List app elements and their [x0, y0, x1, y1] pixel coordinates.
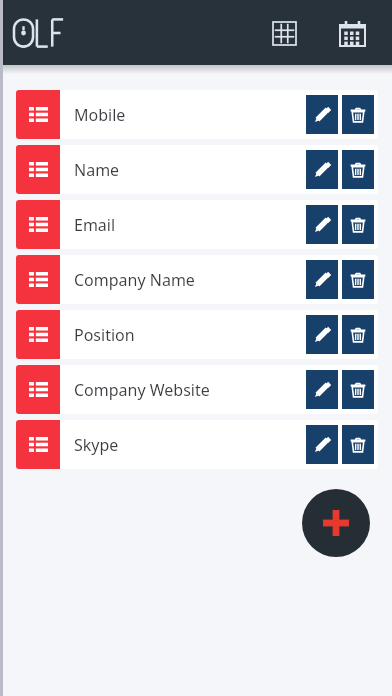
button[interactable]: Edit Position	[306, 315, 338, 354]
staticText: Name	[74, 159, 306, 181]
button[interactable]: Delete Skype	[342, 425, 374, 464]
button[interactable]: Delete Position	[342, 315, 374, 354]
button[interactable]: Reorder Position	[16, 310, 378, 359]
button[interactable]: Reorder Mobile	[16, 90, 378, 139]
button[interactable]: Reorder Skype	[16, 420, 378, 469]
button[interactable]: Delete Mobile	[342, 95, 374, 134]
button[interactable]: Delete Email	[342, 205, 374, 244]
button[interactable]: Reorder Skype	[16, 420, 60, 469]
button[interactable]: Reorder Company Website	[16, 365, 60, 414]
button[interactable]: Edit Skype	[306, 425, 338, 464]
staticText: Skype	[74, 434, 306, 456]
button[interactable]: Edit Company Name	[306, 260, 338, 299]
button[interactable]: OLF logo	[14, 16, 78, 50]
button[interactable]: Reorder Name	[16, 145, 60, 194]
button[interactable]: Reorder Email	[16, 200, 60, 249]
button[interactable]: Edit Mobile	[306, 95, 338, 134]
staticText: Company Name	[74, 269, 306, 291]
button[interactable]: Edit Company Website	[306, 370, 338, 409]
button[interactable]: Reorder Mobile	[16, 90, 60, 139]
button[interactable]: Reorder Company Name	[16, 255, 60, 304]
button[interactable]: Edit Email	[306, 205, 338, 244]
button[interactable]: Reorder Company Website	[16, 365, 378, 414]
staticText: Position	[74, 324, 306, 346]
button[interactable]: Delete Company Website	[342, 370, 374, 409]
button[interactable]: Grid view	[264, 13, 304, 53]
button[interactable]: Reorder Email	[16, 200, 378, 249]
button[interactable]: Edit Name	[306, 150, 338, 189]
button[interactable]: Delete Name	[342, 150, 374, 189]
staticText: Mobile	[74, 104, 306, 126]
button[interactable]: Reorder Name	[16, 145, 378, 194]
staticText: Email	[74, 214, 306, 236]
button[interactable]: Reorder Position	[16, 310, 60, 359]
button[interactable]: Add	[302, 489, 370, 557]
button[interactable]: Delete Company Name	[342, 260, 374, 299]
staticText: Company Website	[74, 379, 306, 401]
button[interactable]: Reorder Company Name	[16, 255, 378, 304]
button[interactable]: Calendar	[332, 13, 372, 53]
